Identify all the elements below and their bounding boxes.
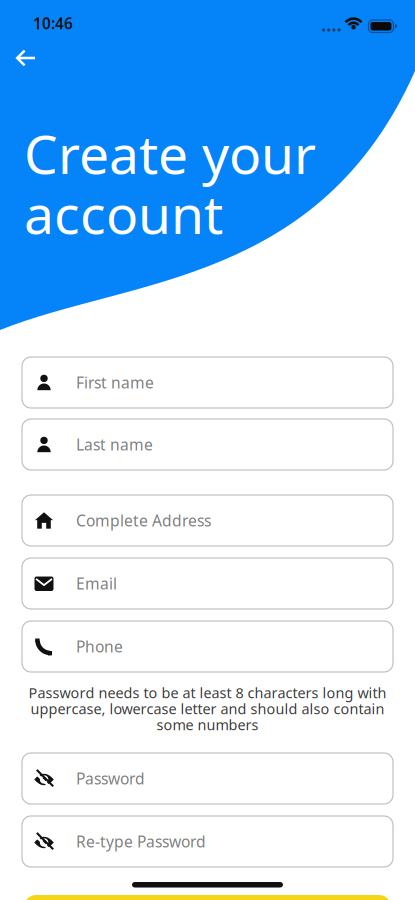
button[interactable]: Last name <box>22 419 393 470</box>
button[interactable]: Phone <box>22 621 393 672</box>
staticText: some numbers <box>156 715 258 734</box>
staticText: Create your <box>24 118 316 189</box>
staticText: Re-type Password <box>76 831 206 852</box>
staticText: Phone <box>76 636 123 657</box>
button[interactable]: Password <box>22 753 393 804</box>
button[interactable] <box>14 46 38 70</box>
staticText: 10:46 <box>33 13 73 33</box>
button[interactable]: First name <box>22 357 393 408</box>
staticText: Last name <box>76 434 153 455</box>
staticText: Password needs to be at least 8 characte… <box>28 683 386 702</box>
staticText: First name <box>76 372 154 393</box>
staticText: Email <box>76 573 117 594</box>
button[interactable] <box>24 895 391 900</box>
staticText: uppercase, lowercase letter and should a… <box>30 699 384 718</box>
staticText: Complete Address <box>76 510 211 531</box>
staticText: account <box>24 178 223 249</box>
button[interactable]: Re-type Password <box>22 816 393 867</box>
button[interactable]: Complete Address <box>22 495 393 546</box>
staticText: Password <box>76 768 145 789</box>
button[interactable]: Email <box>22 558 393 609</box>
